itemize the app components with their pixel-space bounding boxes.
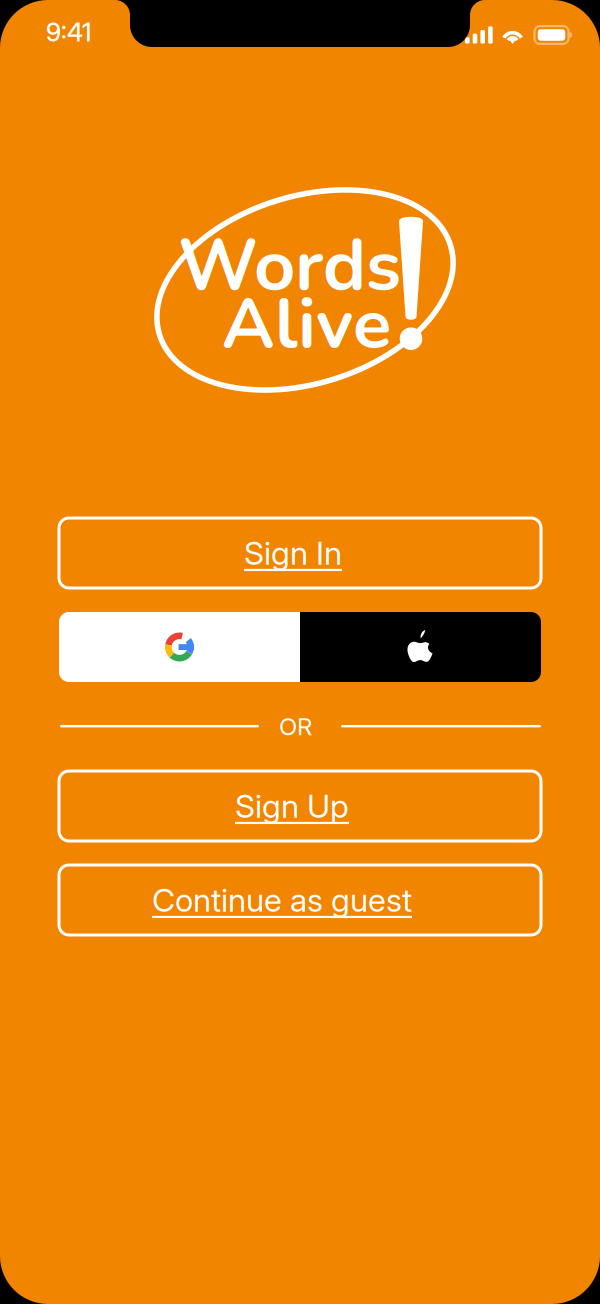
staticText: Sign Up xyxy=(235,787,349,825)
staticText: Alive xyxy=(222,276,391,372)
staticText: OR xyxy=(279,712,312,741)
button[interactable]: Sign Up xyxy=(59,771,541,841)
staticText: Continue as guest xyxy=(152,881,412,919)
button[interactable]: Continue as guest xyxy=(59,865,541,935)
button[interactable]: Sign in with Google xyxy=(59,612,300,682)
button[interactable]: Sign In xyxy=(59,518,541,588)
button[interactable]: Sign in with Apple xyxy=(300,612,541,682)
staticText: Sign In xyxy=(244,534,342,572)
staticText: Words xyxy=(178,217,401,315)
staticText: 9:41 xyxy=(46,17,91,48)
